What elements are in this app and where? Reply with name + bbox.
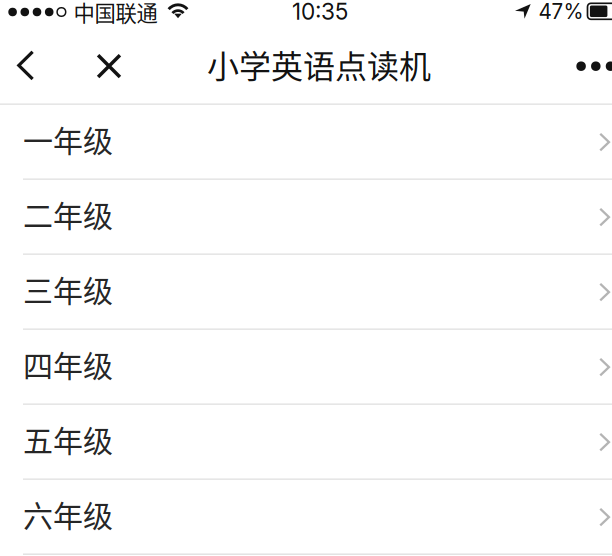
button[interactable]: Back (0, 35, 50, 95)
button[interactable]: Close (83, 36, 135, 96)
button[interactable]: 四年级 (0, 330, 612, 405)
staticText: 10:35 (292, 0, 348, 25)
button[interactable]: 六年级 (0, 480, 612, 555)
button[interactable]: More (570, 36, 612, 96)
button[interactable]: 三年级 (0, 255, 612, 330)
button[interactable]: 一年级 (0, 105, 612, 180)
button[interactable]: 五年级 (0, 405, 612, 480)
staticText: 三年级 (23, 267, 113, 311)
staticText: 五年级 (23, 417, 113, 461)
staticText: 小学英语点读机 (207, 41, 431, 87)
staticText: 二年级 (23, 192, 113, 236)
staticText: 一年级 (23, 117, 113, 161)
button[interactable]: 二年级 (0, 180, 612, 255)
staticText: 47% (538, 0, 583, 24)
staticText: 中国联通 (73, 0, 157, 27)
staticText: 六年级 (23, 492, 113, 536)
staticText: 四年级 (23, 342, 113, 386)
